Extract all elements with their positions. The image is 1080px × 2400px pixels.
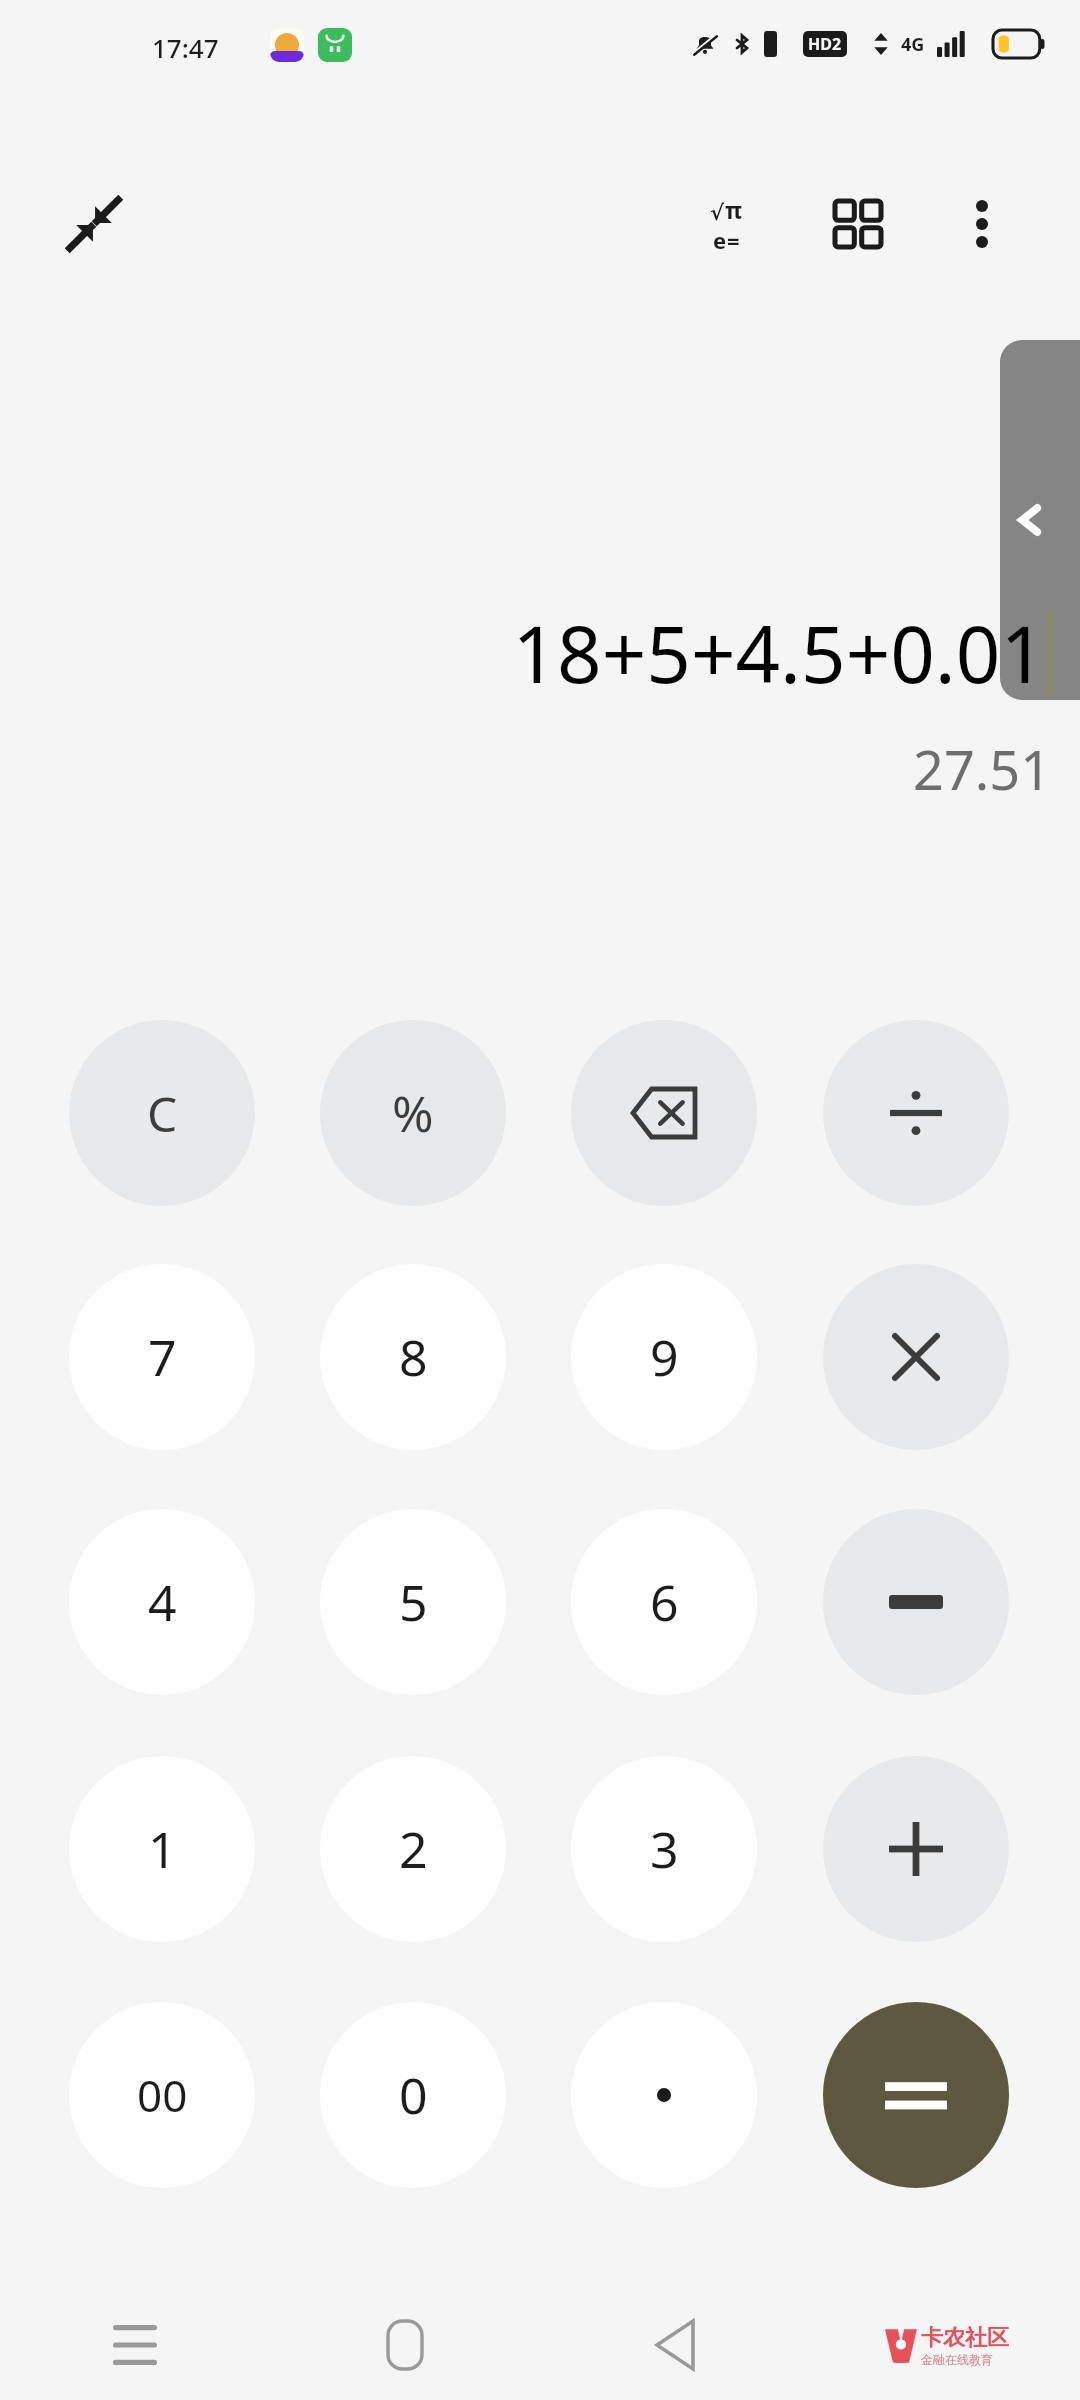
button[interactable]: Scientific mode	[680, 178, 772, 270]
staticText: 4	[148, 1568, 177, 1636]
button[interactable]: 1	[69, 1756, 255, 1942]
staticText: HD2	[808, 33, 842, 55]
button[interactable]: 8	[320, 1264, 506, 1450]
staticText: =	[727, 225, 740, 255]
staticText: 5	[399, 1568, 428, 1636]
staticText: 18+5+4.5+0.01	[512, 600, 1045, 706]
staticText: 8	[399, 1323, 428, 1391]
button[interactable]	[823, 1509, 1009, 1695]
button[interactable]: Open panel	[1000, 340, 1080, 700]
button[interactable]: %	[320, 1020, 506, 1206]
button[interactable]: 2	[320, 1756, 506, 1942]
button[interactable]: Back	[540, 2290, 810, 2400]
staticText: 27.51	[913, 732, 1052, 806]
button[interactable]	[823, 2002, 1009, 2188]
button[interactable]: 3	[571, 1756, 757, 1942]
staticText: √	[710, 201, 725, 225]
button[interactable]: Backspace	[571, 1020, 757, 1206]
staticText: 1	[148, 1815, 177, 1883]
button[interactable]: Home	[270, 2290, 540, 2400]
staticText: C	[147, 1081, 178, 1146]
staticText: %	[392, 1079, 434, 1147]
button[interactable]	[823, 1020, 1009, 1206]
staticText: 17:47	[152, 30, 219, 65]
button[interactable]	[571, 2002, 757, 2188]
button[interactable]: Recents	[0, 2290, 270, 2400]
button[interactable]: 5	[320, 1509, 506, 1695]
button[interactable]	[823, 1756, 1009, 1942]
button[interactable]: 6	[571, 1509, 757, 1695]
staticText: 卡农社区	[921, 2324, 1009, 2352]
button[interactable]: 00	[69, 2002, 255, 2188]
button[interactable]: C	[69, 1020, 255, 1206]
staticText: e	[713, 225, 727, 255]
staticText: 3	[650, 1815, 679, 1883]
staticText: 6	[650, 1568, 679, 1636]
button[interactable]: 7	[69, 1264, 255, 1450]
staticText: 4G	[901, 32, 925, 57]
button[interactable]: 9	[571, 1264, 757, 1450]
staticText: π	[725, 194, 743, 225]
button[interactable]: More options	[936, 178, 1028, 270]
button[interactable]: Collapse	[48, 178, 140, 270]
button[interactable]	[823, 1264, 1009, 1450]
button[interactable]: 4	[69, 1509, 255, 1695]
button[interactable]: Apps	[812, 178, 904, 270]
staticText: 00	[137, 2065, 188, 2125]
staticText: 0	[399, 2061, 428, 2129]
staticText: 9	[650, 1323, 679, 1391]
staticText: 金融在线教育	[921, 2352, 993, 2367]
staticText: 2	[399, 1815, 428, 1883]
staticText: 7	[148, 1323, 177, 1391]
button[interactable]: 0	[320, 2002, 506, 2188]
